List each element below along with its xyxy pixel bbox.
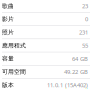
staticText: 應用程式 bbox=[2, 42, 26, 49]
staticText: 64 GB bbox=[72, 55, 88, 63]
staticText: 0 bbox=[85, 15, 88, 23]
staticText: 231 bbox=[79, 28, 88, 36]
staticText: 11.0.1 (15A402) bbox=[47, 81, 88, 89]
staticText: 23 bbox=[82, 2, 88, 10]
button[interactable]: 照片 bbox=[0, 26, 90, 39]
staticText: 49.22 GB bbox=[64, 68, 88, 76]
button[interactable]: 版本 bbox=[0, 79, 90, 90]
button[interactable]: 可用空間 bbox=[0, 65, 90, 79]
staticText: 容量 bbox=[2, 55, 14, 62]
button[interactable]: 歌曲 bbox=[0, 0, 90, 13]
staticText: 影片 bbox=[2, 15, 14, 23]
button[interactable]: 容量 bbox=[0, 52, 90, 65]
button[interactable]: 影片 bbox=[0, 13, 90, 26]
staticText: 55 bbox=[82, 41, 88, 49]
staticText: 照片 bbox=[2, 29, 14, 36]
staticText: 歌曲 bbox=[2, 2, 14, 10]
staticText: 版本 bbox=[2, 81, 14, 89]
button[interactable]: 應用程式 bbox=[0, 39, 90, 52]
staticText: 可用空間 bbox=[2, 68, 26, 75]
